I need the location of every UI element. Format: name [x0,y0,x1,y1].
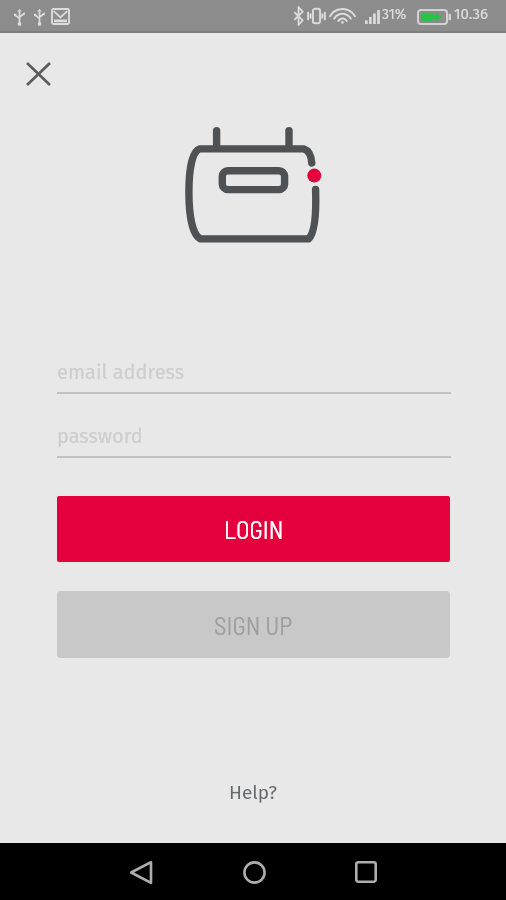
button[interactable]: Recents [338,844,394,900]
staticText: SIGN UP [214,610,293,640]
button[interactable]: SIGN UP [57,591,450,658]
staticText: email address [57,360,185,384]
button[interactable]: Help? [203,772,303,812]
staticText: 10.36 [454,5,488,23]
button[interactable]: Back [112,844,168,900]
button[interactable]: Close [14,49,63,98]
button[interactable]: email address [57,356,451,394]
button[interactable]: LOGIN [57,496,450,562]
staticText: 31% [382,6,407,23]
staticText: Help? [229,781,278,804]
button[interactable]: Home [226,844,282,900]
staticText: LOGIN [224,514,284,544]
staticText: password [57,424,143,448]
button[interactable]: password [57,420,451,458]
